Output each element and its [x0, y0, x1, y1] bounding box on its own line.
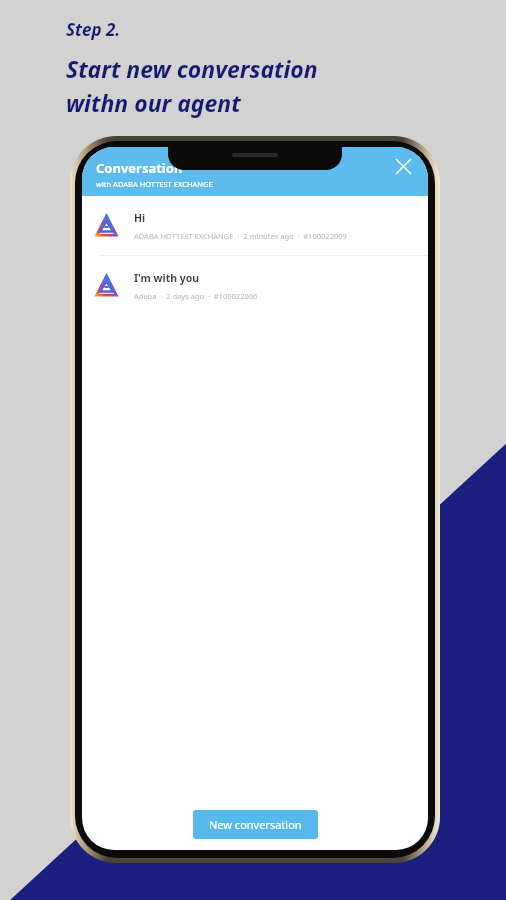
staticText: Conversation [96, 159, 183, 177]
staticText: Start new conversation [66, 53, 318, 84]
staticText: withn our agent [66, 87, 241, 118]
staticText: with ADABA HOTTEST EXCHANGE [96, 179, 213, 189]
staticText: ADABA HOTTEST EXCHANGE · 2 minutes ago ·… [134, 231, 347, 241]
staticText: Hi [134, 211, 146, 225]
button[interactable]: I'm with you [82, 256, 428, 315]
button[interactable]: Hi [82, 196, 428, 255]
button[interactable]: Close [388, 151, 418, 181]
staticText: New conversation [209, 817, 302, 832]
staticText: Adaba · 2 days ago · #100022006 [134, 291, 258, 301]
staticText: I'm with you [134, 271, 200, 285]
button[interactable]: New conversation [193, 810, 318, 839]
staticText: Step 2. [66, 18, 121, 41]
